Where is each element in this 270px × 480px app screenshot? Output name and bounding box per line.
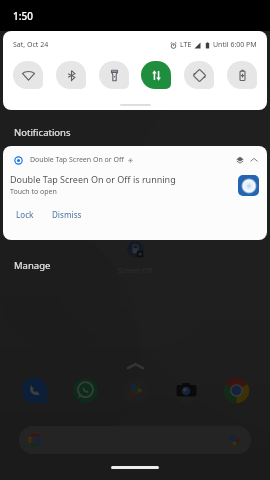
button[interactable]: WhatsApp <box>71 376 99 404</box>
staticText: Touch to open <box>10 187 57 197</box>
button[interactable]: Double Tap Screen On or Off <box>3 146 267 240</box>
button[interactable]: Lock <box>9 206 41 223</box>
staticText: Dismiss <box>52 209 82 220</box>
button[interactable]: Flashlight <box>99 61 129 89</box>
staticText: Lock <box>16 209 34 220</box>
staticText: Sat, Oct 24 <box>13 40 49 50</box>
button[interactable]: Phone <box>20 376 48 404</box>
staticText: Notifications <box>14 126 71 139</box>
button[interactable]: Search <box>19 426 251 454</box>
button[interactable]: Auto-rotate <box>184 61 214 89</box>
staticText: Double Tap Screen On or Off is running <box>10 173 176 185</box>
button[interactable]: Camera <box>172 376 200 404</box>
button[interactable]: Manage <box>0 258 59 274</box>
button[interactable]: Chrome <box>222 376 250 404</box>
button[interactable]: Bluetooth <box>56 61 86 89</box>
button[interactable]: Battery Saver <box>227 61 257 89</box>
staticText: Until 6:00 PM <box>213 40 257 50</box>
staticText: LTE <box>180 40 192 50</box>
button[interactable]: Mobile data <box>141 61 171 89</box>
button[interactable]: Wi-Fi <box>13 61 43 89</box>
staticText: Screen Off <box>118 266 153 276</box>
staticText: 1:50 <box>13 9 33 23</box>
button[interactable]: Screen Off <box>127 241 144 258</box>
button[interactable]: Play Store <box>121 376 149 404</box>
staticText: Manage <box>14 259 51 272</box>
staticText: Double Tap Screen On or Off <box>30 155 124 165</box>
button[interactable]: Dismiss <box>45 206 89 223</box>
